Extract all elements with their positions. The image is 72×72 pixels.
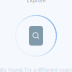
- staticText: Explore: [26, 0, 45, 4]
- button[interactable]: Search: [29, 26, 43, 46]
- staticText: No results found. Try a different search…: [0, 66, 72, 72]
